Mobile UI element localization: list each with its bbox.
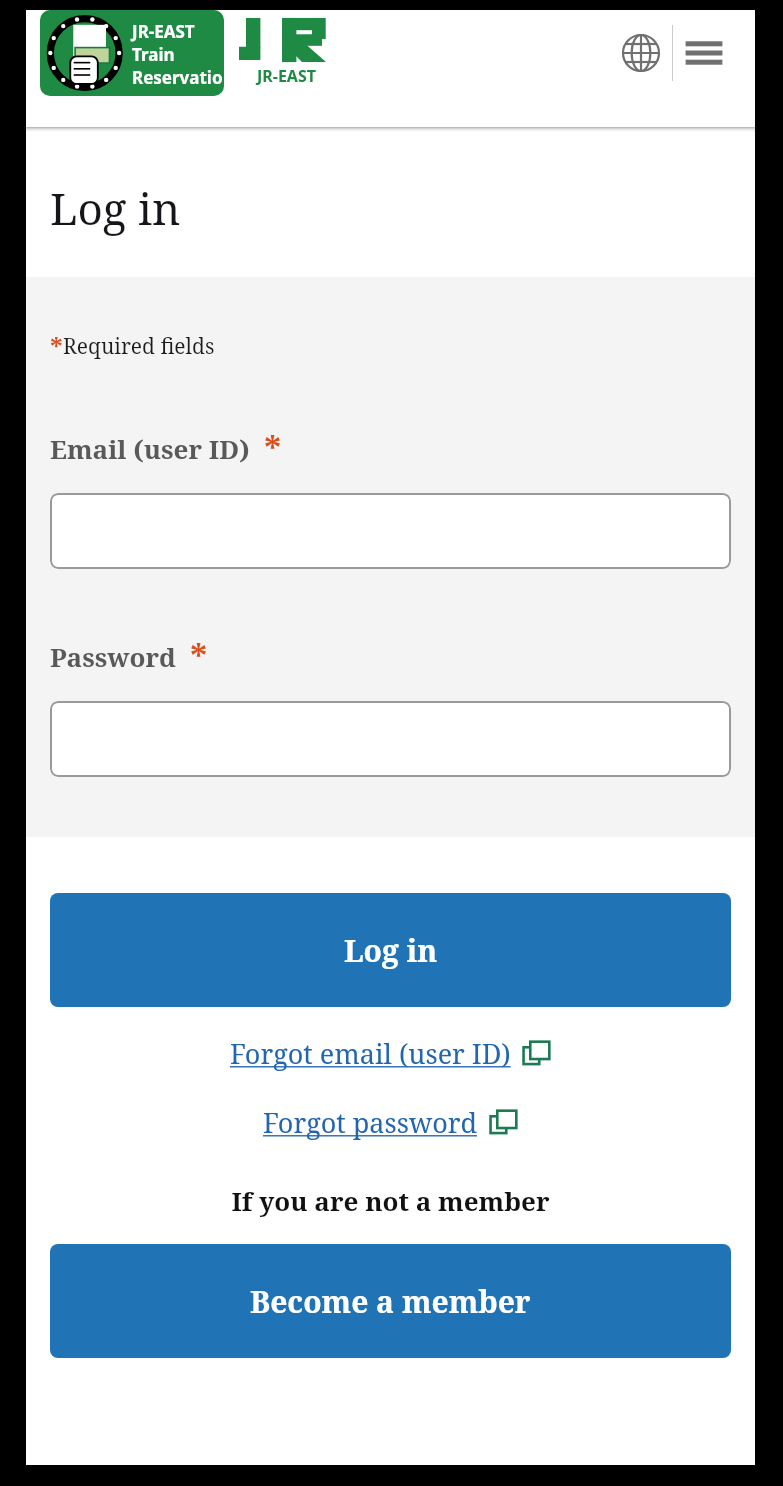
staticText: If you are not a member <box>231 1183 550 1218</box>
staticText: JR-EAST <box>257 65 316 87</box>
staticText: Required fields <box>63 332 215 361</box>
staticText: Become a member <box>250 1281 531 1322</box>
button[interactable]: Text input <box>50 701 731 777</box>
button[interactable]: JR-EAST Train Reservation home <box>40 10 224 96</box>
staticText: Email (user ID) <box>50 431 250 466</box>
button[interactable]: Forgot email (user ID) <box>226 1033 555 1074</box>
button[interactable]: Text input <box>50 493 731 569</box>
staticText: * <box>190 633 208 679</box>
staticText: Password <box>50 639 176 674</box>
button[interactable]: Become a member <box>50 1244 731 1358</box>
button[interactable]: Forgot password <box>259 1102 522 1143</box>
staticText: Forgot email (user ID) <box>230 1035 511 1072</box>
staticText: Reservation <box>132 66 224 96</box>
staticText: * <box>264 425 282 471</box>
staticText: JR-EAST <box>132 20 195 43</box>
staticText: Log in <box>344 930 438 971</box>
button[interactable]: Menu <box>673 22 735 84</box>
button[interactable]: JR-EAST <box>236 17 336 89</box>
staticText: Log in <box>50 178 181 238</box>
button[interactable]: Log in <box>50 893 731 1007</box>
staticText: * <box>50 329 63 363</box>
button[interactable]: Language <box>610 22 672 84</box>
staticText: Train <box>132 43 175 66</box>
staticText: Forgot password <box>263 1104 478 1141</box>
